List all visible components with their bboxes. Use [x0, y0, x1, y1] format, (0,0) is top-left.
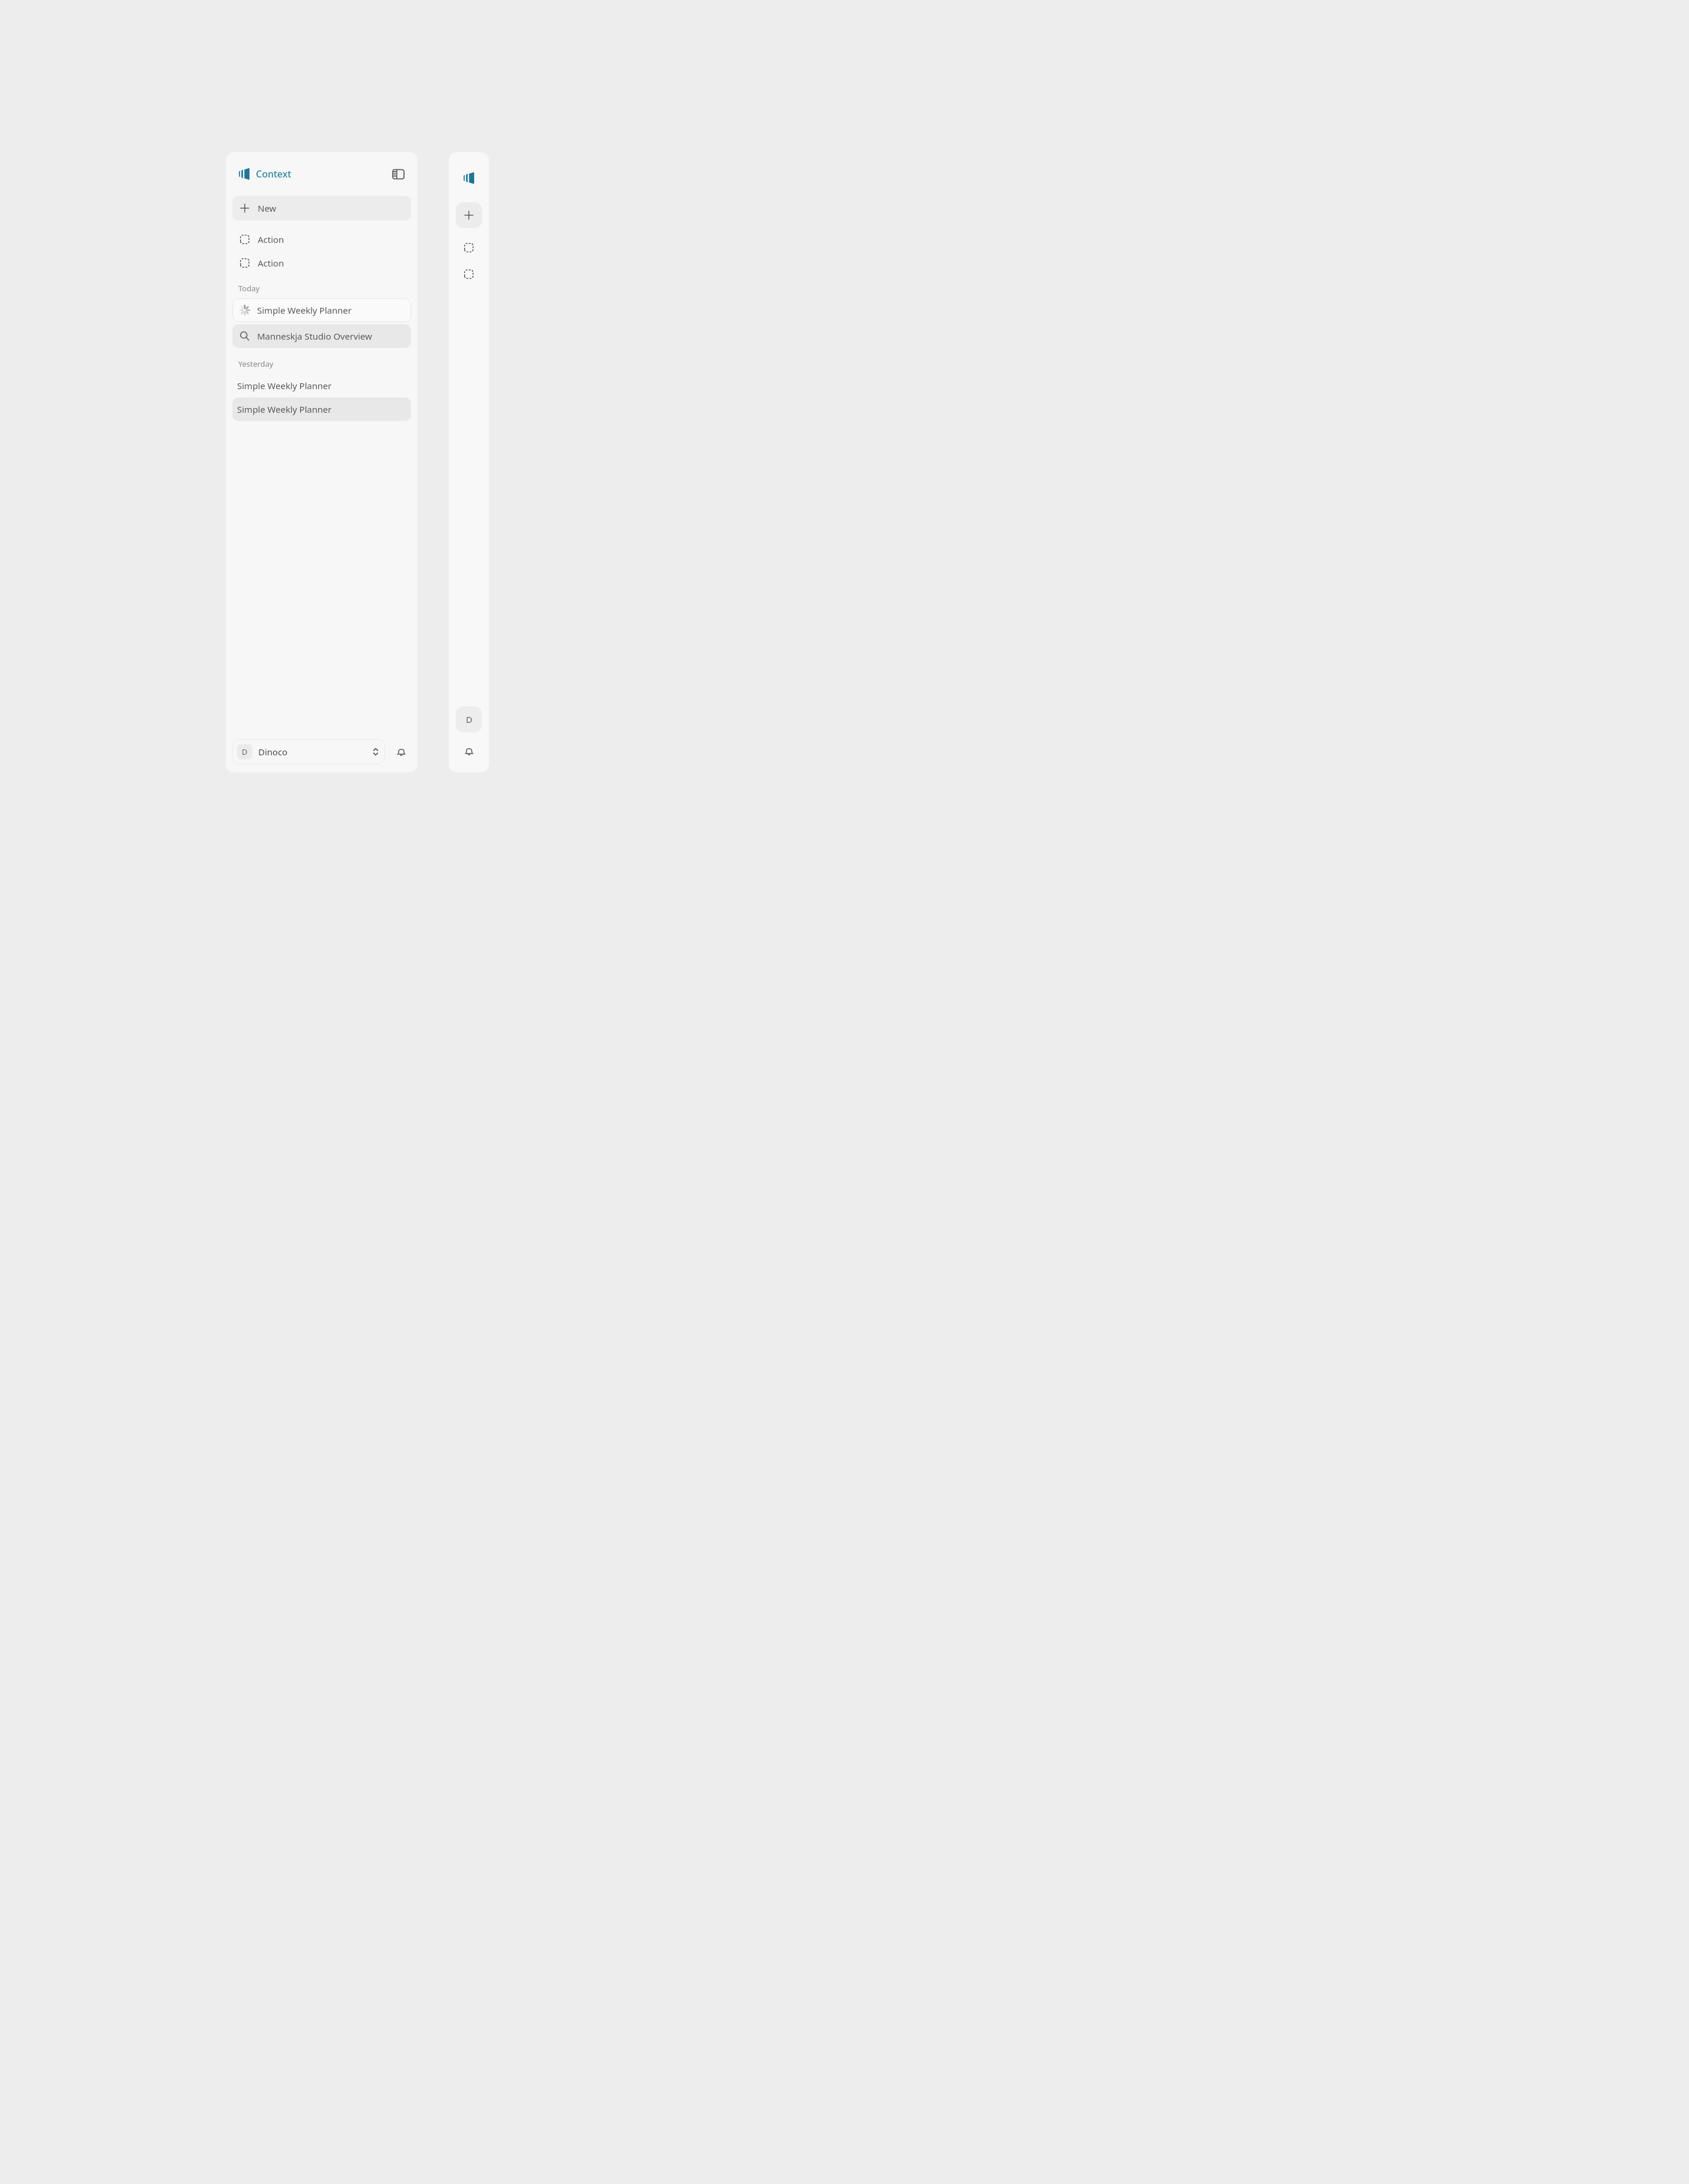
staticText: New: [258, 202, 277, 214]
staticText: Dinoco: [258, 746, 288, 758]
button[interactable]: Context: [238, 167, 291, 180]
button[interactable]: Toggle sidebar: [389, 165, 407, 183]
staticText: Simple Weekly Planner: [257, 304, 352, 316]
button[interactable]: New: [456, 202, 482, 228]
button[interactable]: Action: [232, 228, 411, 251]
button[interactable]: Action: [232, 251, 411, 275]
button[interactable]: Notifications: [392, 743, 410, 761]
button[interactable]: Simple Weekly Planner: [232, 397, 411, 421]
button[interactable]: D: [232, 739, 385, 764]
staticText: Simple Weekly Planner: [237, 380, 332, 392]
button[interactable]: Notifications: [459, 742, 478, 761]
button[interactable]: Simple Weekly Planner: [232, 298, 411, 322]
staticText: Action: [258, 257, 284, 269]
button[interactable]: New: [232, 196, 411, 221]
staticText: D: [242, 746, 248, 757]
button[interactable]: Manneskja Studio Overview: [232, 324, 411, 348]
staticText: Manneskja Studio Overview: [257, 330, 372, 342]
staticText: Action: [258, 233, 284, 245]
button[interactable]: Simple Weekly Planner: [232, 374, 411, 397]
staticText: Yesterday: [238, 358, 274, 369]
staticText: Simple Weekly Planner: [237, 403, 332, 415]
staticText: Context: [256, 167, 291, 180]
staticText: Today: [238, 283, 260, 294]
button[interactable]: Context: [459, 168, 479, 188]
button[interactable]: Account Dinoco: [456, 706, 482, 732]
button[interactable]: Action: [458, 236, 480, 259]
staticText: D: [466, 713, 472, 725]
button[interactable]: Action: [458, 263, 480, 285]
